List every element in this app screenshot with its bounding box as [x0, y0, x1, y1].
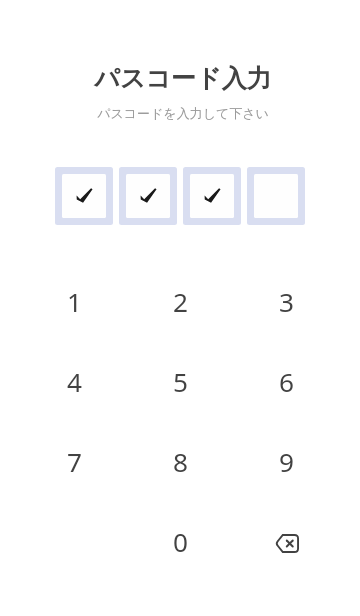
- button[interactable]: 9: [240, 422, 360, 502]
- button[interactable]: 2: [120, 262, 240, 342]
- staticText: 2: [173, 284, 188, 320]
- button[interactable]: Backspace: [240, 502, 360, 582]
- button[interactable]: [119, 167, 177, 225]
- staticText: 7: [67, 444, 82, 480]
- staticText: パスコードを入力して下さい: [97, 105, 269, 121]
- button[interactable]: [183, 167, 241, 225]
- staticText: 1: [67, 284, 82, 320]
- other: Backspace: [269, 525, 305, 561]
- button[interactable]: 7: [0, 422, 120, 502]
- button[interactable]: 8: [120, 422, 240, 502]
- button[interactable]: 6: [240, 342, 360, 422]
- staticText: 4: [67, 364, 82, 400]
- staticText: パスコード入力: [94, 63, 272, 94]
- staticText: 5: [173, 364, 188, 400]
- button[interactable]: [55, 167, 113, 225]
- button[interactable]: 1: [0, 262, 120, 342]
- staticText: 9: [279, 444, 294, 480]
- button[interactable]: 0: [120, 502, 240, 582]
- button[interactable]: 5: [120, 342, 240, 422]
- button[interactable]: 4: [0, 342, 120, 422]
- button[interactable]: [247, 167, 305, 225]
- button[interactable]: 3: [240, 262, 360, 342]
- staticText: 6: [279, 364, 294, 400]
- staticText: 8: [173, 444, 188, 480]
- staticText: 3: [279, 284, 294, 320]
- staticText: 0: [173, 524, 188, 560]
